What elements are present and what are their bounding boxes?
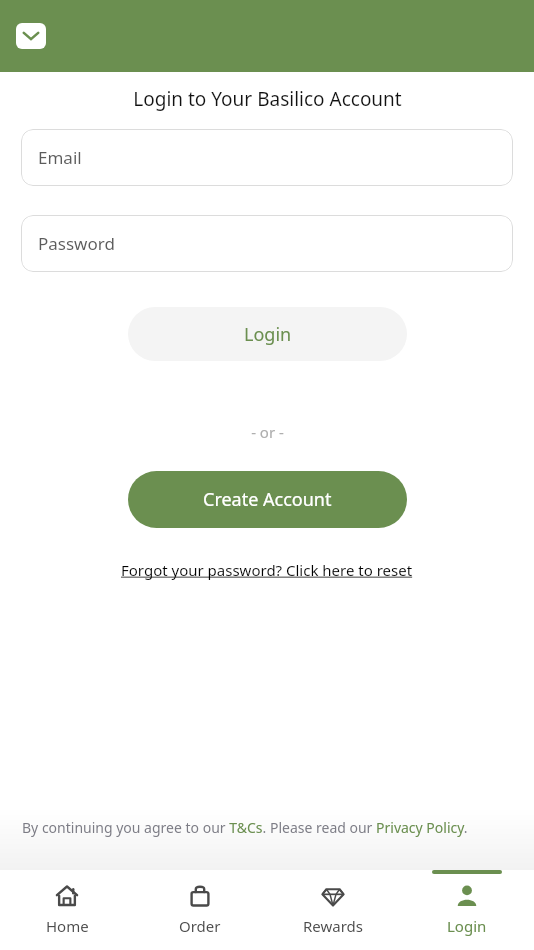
button[interactable]: Messages [16, 23, 46, 49]
button[interactable]: Email [21, 129, 513, 186]
staticText: Rewards [303, 916, 364, 936]
staticText: Home [46, 916, 89, 936]
button[interactable]: Forgot your password? Click here to rese… [117, 558, 417, 582]
staticText: Order [179, 916, 221, 936]
staticText: Password [38, 232, 115, 255]
staticText: Login to Your Basilico Account [133, 86, 402, 112]
staticText: Login [244, 322, 292, 347]
button[interactable]: Login [400, 870, 534, 936]
button[interactable]: Login [128, 307, 407, 361]
staticText: Create Account [203, 487, 332, 512]
button[interactable]: Order [133, 870, 266, 936]
button[interactable]: Create Account [128, 471, 407, 528]
staticText: Forgot your password? Click here to rese… [121, 560, 413, 580]
staticText: By continuing you agree to our T&Cs. Ple… [22, 818, 468, 837]
button[interactable]: Home [0, 870, 133, 936]
staticText: - or - [251, 422, 284, 442]
button[interactable]: Password [21, 215, 513, 272]
staticText: Email [38, 146, 82, 169]
button[interactable]: Rewards [266, 870, 400, 936]
staticText: Login [447, 916, 487, 936]
